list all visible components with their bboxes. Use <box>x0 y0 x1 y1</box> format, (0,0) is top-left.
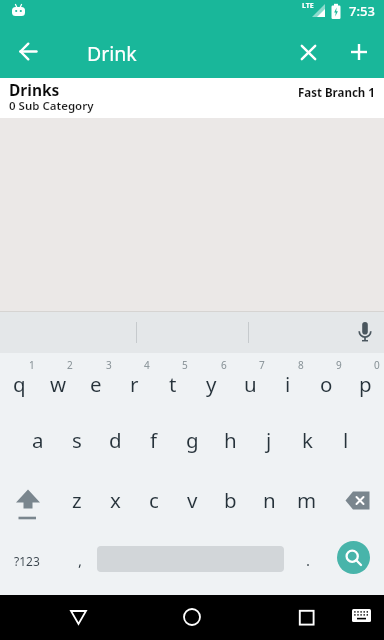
button[interactable] <box>347 602 375 630</box>
staticText: e <box>90 370 102 398</box>
staticText: 5 <box>182 358 188 372</box>
staticText: u <box>244 370 257 398</box>
staticText: 7 <box>259 358 265 372</box>
button[interactable]: w <box>39 367 77 401</box>
button[interactable]: q <box>0 367 38 401</box>
staticText: 9 <box>336 358 342 372</box>
button[interactable]: b <box>211 483 249 517</box>
button[interactable]: k <box>288 423 326 457</box>
staticText: . <box>306 550 311 570</box>
button[interactable]: c <box>135 483 173 517</box>
staticText: n <box>263 486 276 514</box>
button[interactable] <box>337 480 377 520</box>
staticText: p <box>359 370 372 398</box>
staticText: Drinks <box>9 79 60 100</box>
button[interactable]: h <box>211 423 249 457</box>
staticText: g <box>186 426 199 454</box>
staticText: LTE <box>302 1 314 11</box>
staticText: l <box>343 426 349 454</box>
staticText: , <box>78 550 83 570</box>
button[interactable]: u <box>231 367 269 401</box>
button[interactable]: s <box>58 423 96 457</box>
staticText: r <box>130 370 139 398</box>
staticText: 2 <box>67 358 73 372</box>
staticText: 0 Sub Category <box>9 98 94 114</box>
button[interactable]: y <box>192 367 230 401</box>
staticText: v <box>187 486 198 514</box>
button[interactable]: o <box>307 367 345 401</box>
button[interactable]: t <box>154 367 192 401</box>
button[interactable]: n <box>250 483 288 517</box>
button[interactable] <box>343 36 375 68</box>
button[interactable]: r <box>115 367 153 401</box>
button[interactable]: v <box>173 483 211 517</box>
button[interactable] <box>174 599 210 635</box>
staticText: q <box>13 370 26 398</box>
button[interactable]: p <box>346 367 384 401</box>
staticText: w <box>50 370 67 398</box>
staticText: Fast Branch 1 <box>298 85 375 101</box>
button[interactable] <box>292 36 324 68</box>
button[interactable] <box>288 599 324 635</box>
button[interactable]: e <box>77 367 115 401</box>
button[interactable]: m <box>288 483 326 517</box>
staticText: m <box>297 486 317 514</box>
button[interactable]: f <box>135 423 173 457</box>
staticText: 1 <box>29 358 35 372</box>
button[interactable]: j <box>250 423 288 457</box>
button[interactable] <box>337 541 370 574</box>
button[interactable]: x <box>96 483 134 517</box>
staticText: 4 <box>144 358 150 372</box>
button[interactable]: a <box>19 423 57 457</box>
staticText: 6 <box>221 358 227 372</box>
staticText: z <box>72 486 82 514</box>
button[interactable] <box>12 35 45 68</box>
staticText: x <box>110 486 121 514</box>
staticText: 8 <box>298 358 304 372</box>
staticText: h <box>224 426 237 454</box>
staticText: a <box>32 426 44 454</box>
button[interactable]: z <box>58 483 96 517</box>
staticText: t <box>169 370 177 398</box>
button[interactable]: ?123 <box>6 544 48 578</box>
button[interactable] <box>352 319 378 345</box>
button[interactable]: . <box>289 543 327 577</box>
staticText: d <box>109 426 122 454</box>
staticText: o <box>320 370 333 398</box>
button[interactable]: , <box>61 543 99 577</box>
staticText: 7:53 <box>349 2 375 20</box>
staticText: c <box>149 486 159 514</box>
button[interactable] <box>60 599 96 635</box>
staticText: ?123 <box>14 553 40 569</box>
staticText: 3 <box>106 358 112 372</box>
staticText: y <box>206 370 217 398</box>
button[interactable]: i <box>269 367 307 401</box>
button[interactable]: d <box>96 423 134 457</box>
staticText: k <box>302 426 313 454</box>
staticText: s <box>72 426 82 454</box>
staticText: b <box>224 486 237 514</box>
staticText: f <box>150 426 158 454</box>
staticText: Drink <box>87 40 137 67</box>
button[interactable]: g <box>173 423 211 457</box>
staticText: j <box>266 426 272 454</box>
button[interactable] <box>8 482 48 522</box>
button[interactable]: l <box>327 423 365 457</box>
staticText: 0 <box>374 358 380 372</box>
staticText: i <box>285 370 291 398</box>
